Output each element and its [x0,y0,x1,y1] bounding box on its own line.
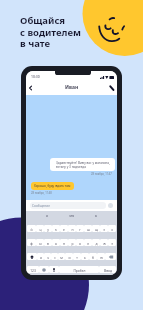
staticText: п [63,241,65,245]
button[interactable]: ч [44,253,51,260]
staticText: 123 [30,268,36,272]
button[interactable]: о [76,239,84,246]
staticText: Хорошо, буду ждать там [34,184,71,188]
button[interactable]: б [89,253,97,260]
staticText: 28 ноября, 11:47 [91,172,112,176]
button[interactable]: д [92,239,100,246]
staticText: м [60,255,63,259]
staticText: р [71,241,74,245]
button[interactable]: э [108,239,116,246]
staticText: л [87,241,89,245]
staticText: е [63,227,65,231]
staticText: в [47,241,49,245]
button[interactable]: Сообщение [30,202,106,209]
button[interactable]: х [108,225,116,232]
staticText: х [111,227,113,231]
staticText: к [55,227,57,231]
staticText: э [111,241,113,245]
staticText: ю [100,255,103,259]
button[interactable]: л [84,239,92,246]
button[interactable] [27,253,37,260]
staticText: Сообщение [32,204,51,208]
button[interactable] [39,266,49,273]
button[interactable]: а [52,239,60,246]
staticText: 10:30 [31,74,40,79]
button[interactable]: з [100,225,108,232]
staticText: т [76,255,78,259]
button[interactable]: к [52,225,60,232]
button[interactable]: Ввод [99,266,116,273]
button[interactable]: п [60,239,68,246]
button[interactable]: я [37,253,44,260]
button[interactable]: Назад [26,82,36,94]
button[interactable]: 123 [27,266,39,273]
staticText: г [79,227,81,231]
staticText: Ввод [104,268,112,272]
staticText: Иван [65,84,79,91]
button[interactable] [105,253,116,260]
staticText: ы [39,241,42,245]
staticText: й [30,227,33,231]
staticText: щ [95,227,98,231]
button[interactable]: ц [36,225,44,232]
staticText: ш [87,227,90,231]
staticText: 28 ноября, 11:48 [31,191,52,195]
button[interactable]: в [44,239,52,246]
staticText: ж [103,241,106,245]
staticText: а [55,241,57,245]
staticText: Здравствуйте! Вижу вас у магазина, встан… [56,161,110,169]
button[interactable]: Отправить [108,203,113,208]
staticText: н [71,227,74,231]
staticText: с [54,255,56,259]
staticText: у [47,227,49,231]
button[interactable]: р [68,239,76,246]
staticText: я [46,214,48,218]
button[interactable]: Позвонить [107,82,117,94]
button[interactable]: ь [81,253,89,260]
staticText: Пробел [73,268,86,272]
button[interactable]: ф [27,239,36,246]
staticText: ч [47,255,49,259]
button[interactable]: м [58,253,65,260]
staticText: о [79,241,81,245]
button[interactable]: н [68,225,76,232]
button[interactable]: ы [36,239,44,246]
button[interactable]: ж [100,239,108,246]
button[interactable]: е [60,225,68,232]
button[interactable]: г [76,225,84,232]
button[interactable] [49,266,59,273]
staticText: ц [39,227,42,231]
staticText: а [95,214,97,218]
staticText: з [103,227,105,231]
staticText: Общайся с водителем в чате [20,14,82,49]
button[interactable]: й [27,225,36,232]
button[interactable]: у [44,225,52,232]
staticText: д [95,241,98,245]
staticText: ь [84,255,86,259]
staticText: и [68,255,71,259]
button[interactable]: щ [92,225,100,232]
staticText: ф [30,241,33,245]
button[interactable]: и [65,253,73,260]
button[interactable]: Пробел [59,266,99,273]
staticText: б [92,255,94,259]
button[interactable]: т [73,253,81,260]
button[interactable]: с [51,253,58,260]
staticText: я [40,255,42,259]
button[interactable]: ш [84,225,92,232]
button[interactable]: ю [97,253,105,260]
staticText: что [69,214,75,218]
